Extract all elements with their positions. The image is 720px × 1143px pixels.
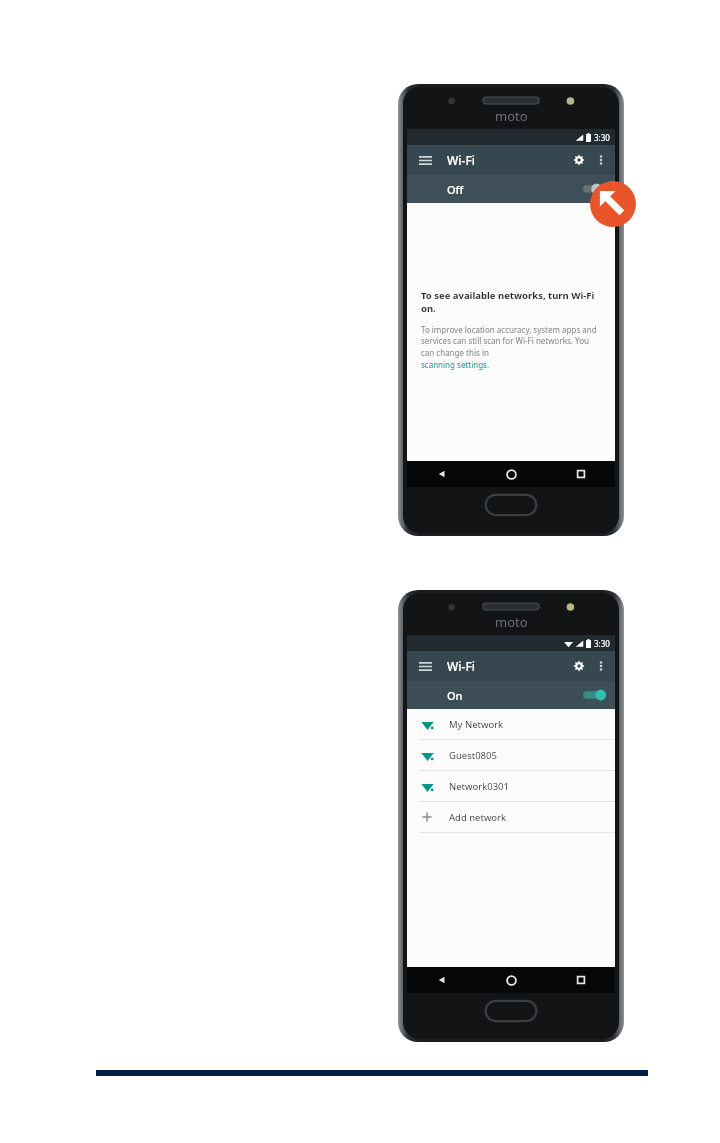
button[interactable]: More options [591, 150, 611, 170]
button[interactable]: Recent apps [546, 461, 615, 487]
staticText: To see available networks, turn Wi-Fi on… [421, 289, 601, 315]
button[interactable]: Guest0805 [407, 740, 615, 770]
button[interactable]: Back [407, 967, 477, 993]
staticText: Wi-Fi [447, 152, 475, 168]
button[interactable]: Turn Wi-Fi off [581, 686, 607, 704]
staticText: 3:30 [594, 132, 610, 143]
button[interactable]: scanning settings. [421, 359, 490, 370]
staticText: Network0301 [449, 780, 509, 793]
button[interactable]: Back [407, 461, 477, 487]
staticText: On [447, 688, 463, 703]
button[interactable]: Home [477, 461, 546, 487]
button[interactable]: Open navigation menu [415, 656, 435, 676]
button[interactable]: On [407, 681, 615, 709]
button[interactable]: Turn Wi-Fi on [581, 180, 607, 198]
button[interactable]: More options [591, 656, 611, 676]
staticText: Wi-Fi [447, 658, 475, 674]
staticText: My Network [449, 718, 504, 731]
button[interactable]: Open navigation menu [415, 150, 435, 170]
staticText: To improve location accuracy, system app… [421, 324, 601, 359]
button[interactable]: Recent apps [546, 967, 615, 993]
staticText: Add network [449, 811, 507, 824]
button[interactable]: Off [407, 175, 615, 203]
staticText: Guest0805 [449, 749, 497, 762]
button[interactable]: Wi-Fi settings [567, 654, 591, 678]
button[interactable]: Home [477, 967, 546, 993]
button[interactable]: Tap the Wi-Fi switch [590, 181, 636, 227]
button[interactable]: Network0301 [407, 771, 615, 801]
staticText: Off [447, 182, 464, 197]
button[interactable]: My Network [407, 709, 615, 739]
button[interactable]: Wi-Fi settings [567, 148, 591, 172]
staticText: moto [495, 613, 528, 631]
staticText: moto [495, 107, 528, 125]
button[interactable]: Add network [407, 802, 615, 832]
staticText: 3:30 [594, 638, 610, 649]
